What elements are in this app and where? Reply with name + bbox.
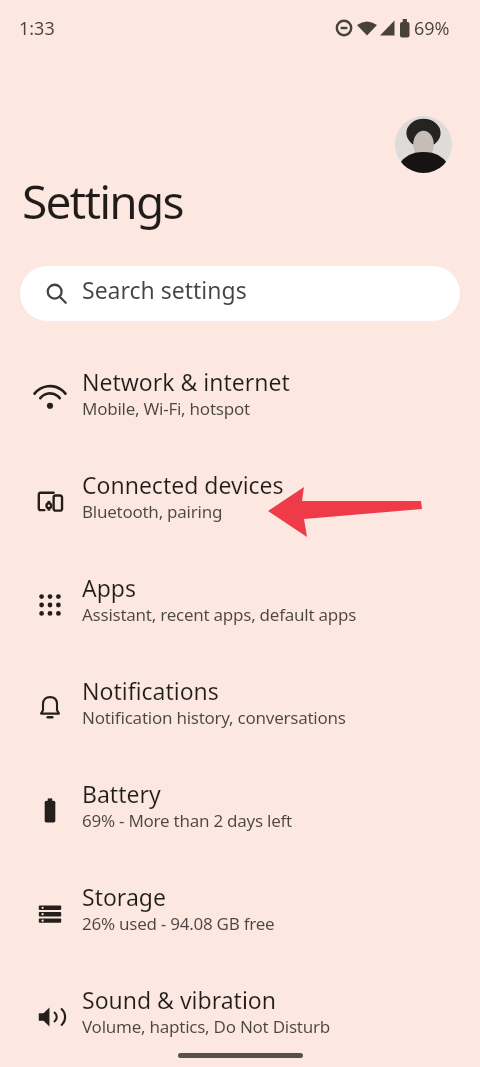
staticText: Mobile, Wi-Fi, hotspot <box>82 397 250 420</box>
staticText: 69% <box>414 16 450 41</box>
staticText: Search settings <box>82 274 247 305</box>
staticText: Bluetooth, pairing <box>82 500 223 523</box>
staticText: Settings <box>22 170 183 233</box>
staticText: Apps <box>82 572 137 603</box>
staticText: 1:33 <box>19 16 55 41</box>
staticText: Network & internet <box>82 366 290 397</box>
staticText: Battery <box>82 778 161 809</box>
button[interactable]: Notifications <box>0 650 480 753</box>
button[interactable]: Apps <box>0 547 480 650</box>
button[interactable]: Battery <box>0 753 480 856</box>
button[interactable]: Storage <box>0 856 480 959</box>
button[interactable]: Search settings <box>20 266 460 321</box>
staticText: Assistant, recent apps, default apps <box>82 603 357 626</box>
button[interactable]: Sound & vibration <box>0 959 480 1062</box>
staticText: Notifications <box>82 675 219 706</box>
button[interactable]: Connected devices <box>0 444 480 547</box>
staticText: Volume, haptics, Do Not Disturb <box>82 1015 330 1038</box>
staticText: 69% - More than 2 days left <box>82 809 292 832</box>
staticText: Connected devices <box>82 469 284 500</box>
staticText: Notification history, conversations <box>82 706 346 729</box>
staticText: Storage <box>82 881 166 912</box>
button[interactable]: Network & internet <box>0 341 480 444</box>
staticText: 26% used - 94.08 GB free <box>82 912 275 935</box>
staticText: Sound & vibration <box>82 984 276 1015</box>
button[interactable] <box>395 116 452 173</box>
